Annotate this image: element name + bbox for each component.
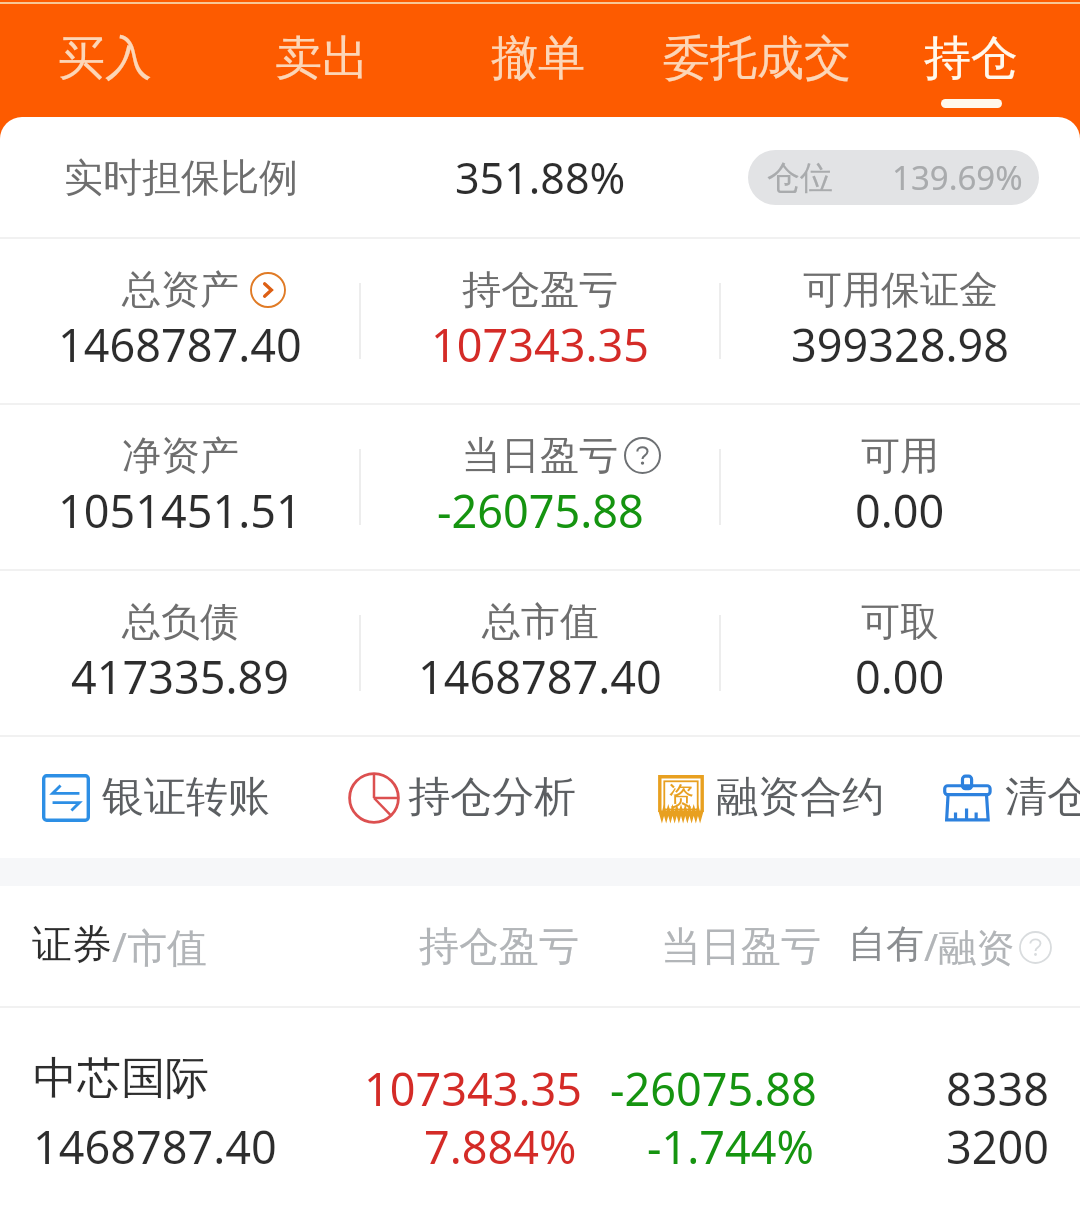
staticText: 仓位 xyxy=(767,157,833,199)
staticText: 0.00 xyxy=(855,646,945,707)
staticText: 持仓分析 xyxy=(408,771,576,824)
staticText: -26075.88 xyxy=(437,480,644,541)
staticText: 总负债 xyxy=(122,597,239,646)
staticText: 卖出 xyxy=(275,29,369,88)
staticText: 自有 xyxy=(848,920,924,968)
button[interactable]: 可用 xyxy=(720,405,1080,569)
staticText: 3200 xyxy=(946,1116,1049,1177)
staticText: 8338 xyxy=(946,1058,1049,1119)
staticText: 清仓 xyxy=(1005,771,1080,824)
staticText: 139.69% xyxy=(892,155,1023,200)
staticText: 撤单 xyxy=(491,29,585,88)
staticText: 可用 xyxy=(861,431,939,480)
staticText: 实时担保比例 xyxy=(64,153,298,202)
staticText: 1468787.40 xyxy=(33,1116,277,1177)
staticText: 107343.35 xyxy=(364,1058,582,1119)
other: Help xyxy=(1019,931,1052,964)
staticText: 7.884% xyxy=(424,1116,577,1177)
button[interactable]: 可取 xyxy=(720,571,1080,735)
staticText: 399328.98 xyxy=(791,314,1009,375)
staticText: 证券 xyxy=(32,919,112,969)
staticText: 资 xyxy=(668,780,694,813)
button[interactable]: 总市值 xyxy=(360,571,720,735)
staticText: 1468787.40 xyxy=(418,646,662,707)
staticText: 净资产 xyxy=(122,431,239,480)
button[interactable]: 可用保证金 xyxy=(720,239,1080,403)
button[interactable]: 总资产 xyxy=(0,239,360,403)
button[interactable]: 银证转账 xyxy=(42,737,277,858)
staticText: 持仓 xyxy=(924,29,1018,88)
staticText: 可用保证金 xyxy=(803,265,998,314)
button[interactable]: 清仓 xyxy=(944,737,1080,858)
button[interactable]: 当日盈亏 xyxy=(360,405,720,569)
staticText: 可取 xyxy=(861,597,939,646)
staticText: 当日盈亏 xyxy=(661,921,821,971)
button[interactable]: 总负债 xyxy=(0,571,360,735)
staticText: 1468787.40 xyxy=(58,314,302,375)
staticText: 351.88% xyxy=(455,148,626,207)
button[interactable]: 持仓分析 xyxy=(348,737,583,858)
button[interactable]: 中芯国际 xyxy=(0,1008,1080,1207)
staticText: -26075.88 xyxy=(610,1058,817,1119)
staticText: 持仓盈亏 xyxy=(462,265,618,314)
other: Total assets detail xyxy=(250,272,286,308)
button[interactable]: 卖出 xyxy=(262,0,382,117)
staticText: 融资合约 xyxy=(716,771,884,824)
staticText: /融资 xyxy=(924,920,1015,972)
button[interactable]: 持仓盈亏 xyxy=(360,239,720,403)
button[interactable]: 资 xyxy=(658,737,891,858)
staticText: 持仓盈亏 xyxy=(419,921,579,971)
staticText: 417335.89 xyxy=(71,646,289,707)
staticText: 买入 xyxy=(58,29,152,88)
button[interactable]: 撤单 xyxy=(478,0,598,117)
staticText: 总资产 xyxy=(122,265,239,314)
staticText: 总市值 xyxy=(482,597,599,646)
staticText: 1051451.51 xyxy=(58,480,302,541)
button[interactable]: 持仓 xyxy=(911,0,1031,117)
staticText: 0.00 xyxy=(855,480,945,541)
staticText: 委托成交 xyxy=(663,29,851,88)
button[interactable]: 买入 xyxy=(45,0,165,117)
staticText: 中芯国际 xyxy=(33,1051,209,1106)
button[interactable]: 委托成交 xyxy=(662,0,852,117)
staticText: /市值 xyxy=(112,919,207,974)
staticText: 银证转账 xyxy=(102,771,270,824)
button[interactable]: 净资产 xyxy=(0,405,360,569)
other: Info xyxy=(624,437,661,474)
button[interactable]: 仓位 xyxy=(748,150,1039,205)
staticText: 当日盈亏 xyxy=(462,431,618,480)
staticText: 107343.35 xyxy=(431,314,649,375)
staticText: -1.744% xyxy=(647,1116,814,1177)
button[interactable]: 实时担保比例 xyxy=(0,117,1080,237)
